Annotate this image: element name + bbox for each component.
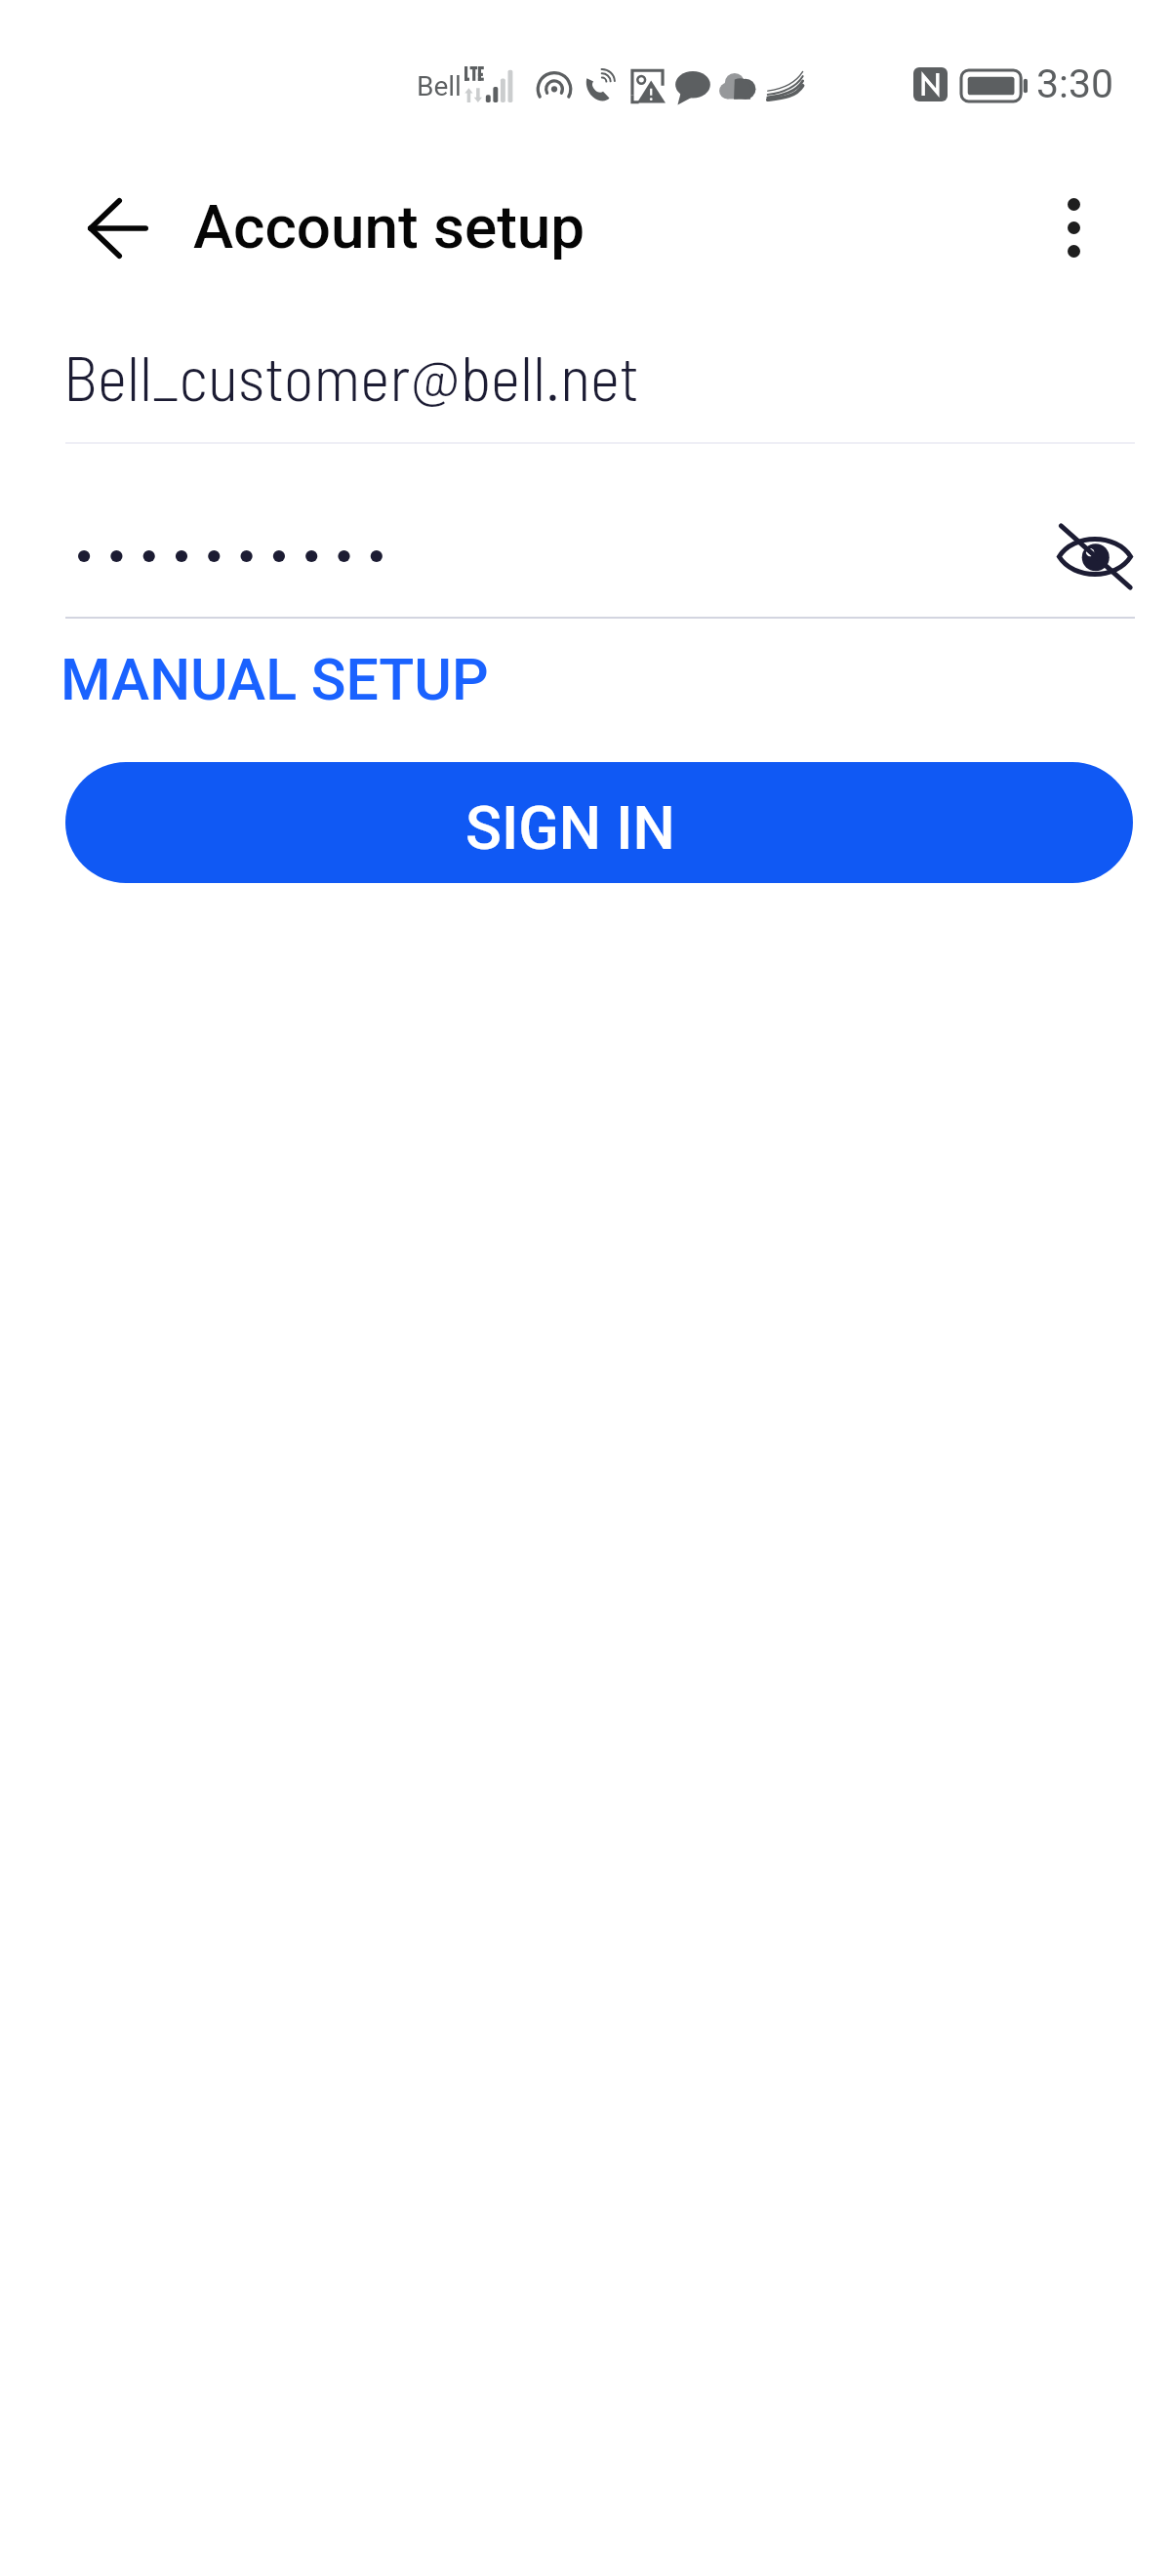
button[interactable]: Back (54, 165, 181, 292)
button[interactable]: SIGN IN (65, 762, 1133, 883)
staticText: MANUAL SETUP (61, 646, 489, 713)
button[interactable]: Show password (1042, 503, 1148, 609)
staticText: Bell_customer@bell.net (63, 338, 639, 414)
button[interactable]: MANUAL SETUP (39, 632, 510, 727)
staticText: 3:30 (1036, 60, 1114, 107)
button[interactable]: Bell_customer@bell.net (61, 314, 1134, 434)
staticText: Account setup (193, 191, 585, 262)
button[interactable]: More options (1019, 173, 1128, 282)
staticText: Bell (417, 70, 462, 102)
button[interactable]: Show password (65, 482, 1134, 630)
staticText: SIGN IN (465, 793, 675, 863)
